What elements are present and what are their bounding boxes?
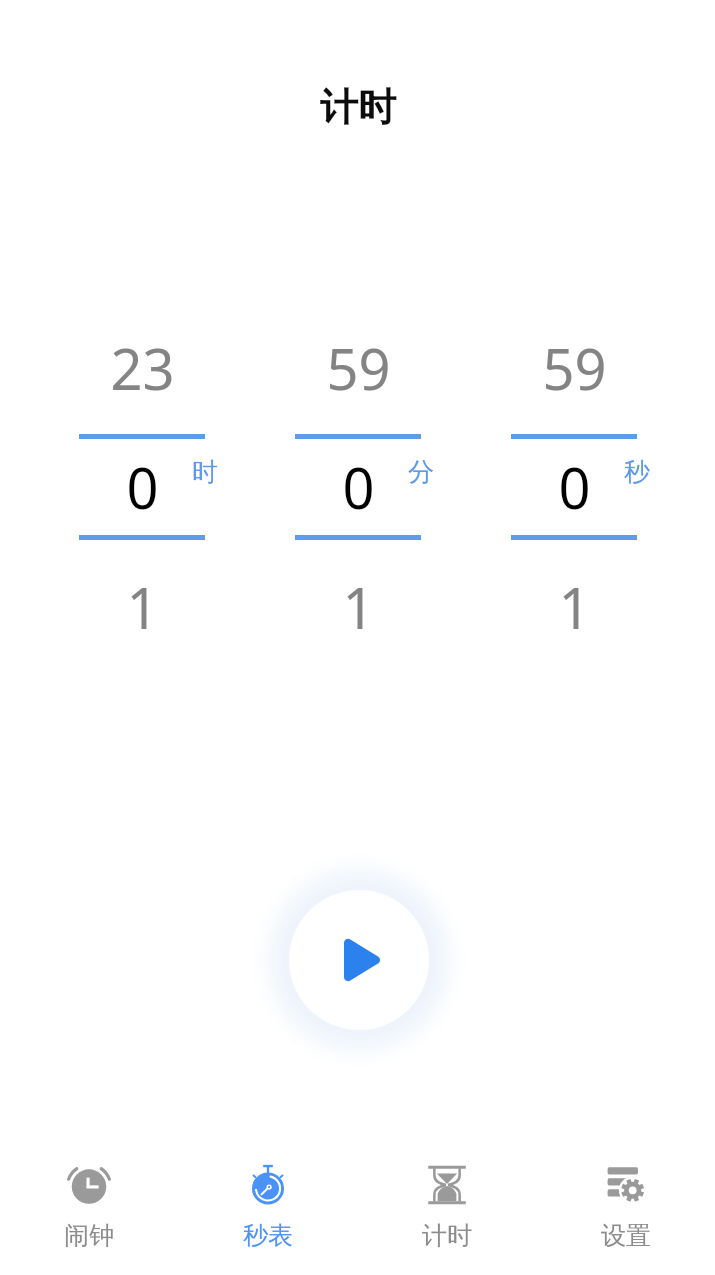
staticText: 设置 xyxy=(601,1220,651,1251)
staticText: 59 xyxy=(542,330,607,406)
staticText: 秒 xyxy=(624,456,650,489)
staticText: 0 xyxy=(558,449,591,525)
staticText: 计时 xyxy=(320,83,396,131)
other: 闹钟 xyxy=(66,1162,112,1208)
button[interactable]: 1 xyxy=(295,569,421,645)
button[interactable]: Start timer xyxy=(289,890,429,1030)
button[interactable]: 0 xyxy=(79,439,205,535)
staticText: 59 xyxy=(326,330,391,406)
staticText: 计时 xyxy=(422,1220,472,1251)
staticText: 时 xyxy=(192,456,218,489)
staticText: 1 xyxy=(558,569,591,645)
staticText: 23 xyxy=(110,330,175,406)
button[interactable]: 1 xyxy=(511,569,637,645)
button[interactable]: 计时 xyxy=(357,1140,536,1275)
button[interactable]: 0 xyxy=(295,439,421,535)
other: 秒表 xyxy=(245,1162,291,1208)
button[interactable]: 0 xyxy=(511,439,637,535)
button[interactable]: 23 xyxy=(79,330,205,406)
staticText: 分 xyxy=(408,456,434,489)
staticText: 1 xyxy=(342,569,375,645)
button[interactable]: 闹钟 xyxy=(0,1140,178,1275)
button[interactable]: 59 xyxy=(295,330,421,406)
staticText: 闹钟 xyxy=(64,1220,114,1251)
button[interactable]: 1 xyxy=(79,569,205,645)
staticText: 1 xyxy=(126,569,159,645)
button[interactable]: 59 xyxy=(511,330,637,406)
staticText: 秒表 xyxy=(243,1220,293,1251)
other: 计时 xyxy=(424,1162,470,1208)
staticText: 0 xyxy=(126,449,159,525)
button[interactable]: 设置 xyxy=(536,1140,715,1275)
button[interactable]: 秒表 xyxy=(178,1140,357,1275)
staticText: 0 xyxy=(342,449,375,525)
other: 设置 xyxy=(603,1162,649,1208)
